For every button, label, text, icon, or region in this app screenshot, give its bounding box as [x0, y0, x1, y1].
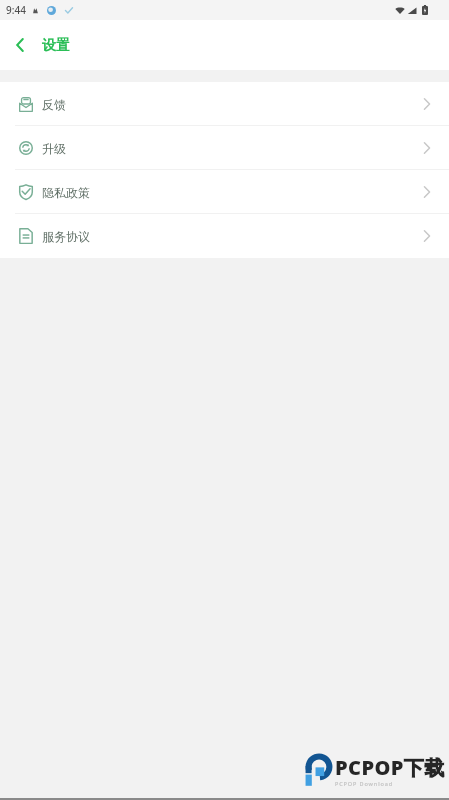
- staticText: 9:44: [6, 3, 26, 17]
- staticText: 设置: [42, 37, 70, 55]
- button[interactable]: 升级: [0, 126, 449, 170]
- staticText: 隐私政策: [42, 185, 90, 200]
- button[interactable]: Back: [0, 20, 40, 70]
- button[interactable]: 服务协议: [0, 214, 449, 258]
- staticText: PCPOP Download: [335, 780, 393, 787]
- staticText: 服务协议: [42, 229, 90, 244]
- staticText: PCPOP下载: [335, 754, 445, 781]
- button[interactable]: 反馈: [0, 82, 449, 126]
- button[interactable]: 隐私政策: [0, 170, 449, 214]
- staticText: 升级: [42, 141, 66, 156]
- staticText: 反馈: [42, 97, 66, 112]
